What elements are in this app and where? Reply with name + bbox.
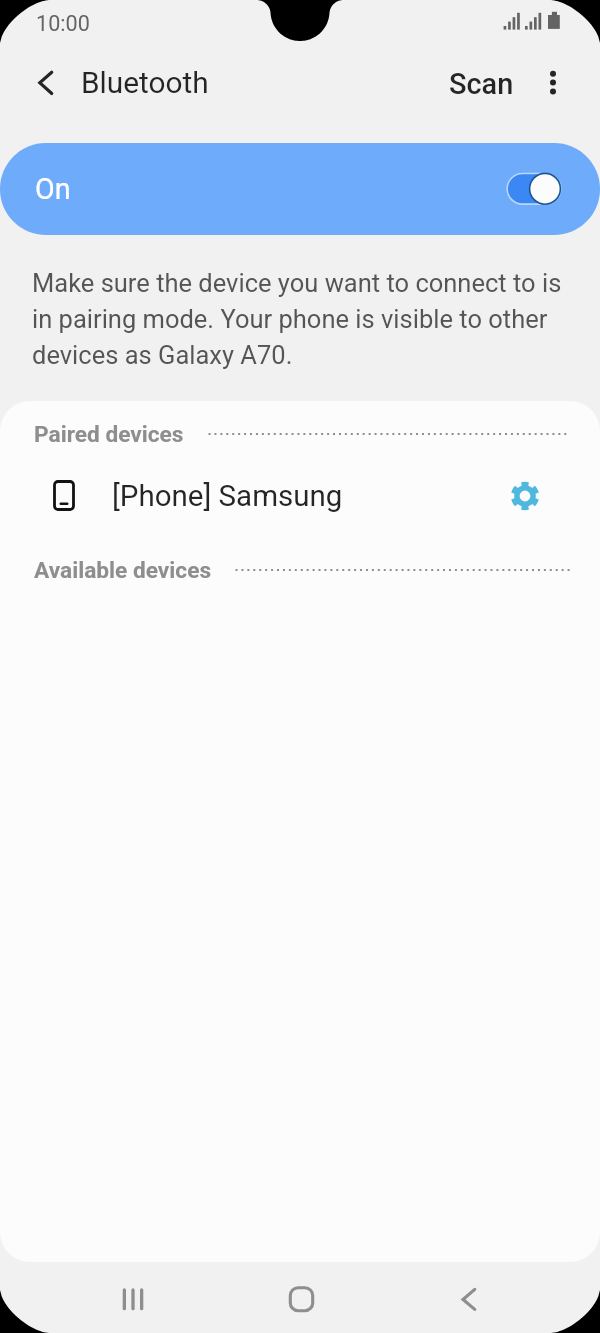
staticText: Make sure the device you want to connect… <box>32 268 572 370</box>
button[interactable]: Home <box>272 1271 328 1327</box>
staticText: [Phone] Samsung <box>112 479 343 514</box>
button[interactable]: Navigate up <box>18 61 62 105</box>
staticText: Bluetooth <box>81 65 209 100</box>
button[interactable]: Paired devices <box>0 421 600 453</box>
button[interactable]: Back <box>440 1271 496 1327</box>
button[interactable]: Device settings <box>499 470 551 522</box>
staticText: Paired devices <box>34 421 184 448</box>
staticText: Scan <box>449 67 514 101</box>
staticText: 10:00 <box>36 11 90 36</box>
staticText: Available devices <box>34 557 212 584</box>
button[interactable]: On <box>0 143 600 235</box>
button[interactable]: More options <box>531 60 575 104</box>
button[interactable]: Available devices <box>0 557 600 589</box>
staticText: On <box>35 172 71 206</box>
button[interactable]: Scan <box>436 60 526 108</box>
button[interactable]: [Phone] Samsung <box>0 461 600 531</box>
button[interactable]: Recent apps <box>105 1271 161 1327</box>
